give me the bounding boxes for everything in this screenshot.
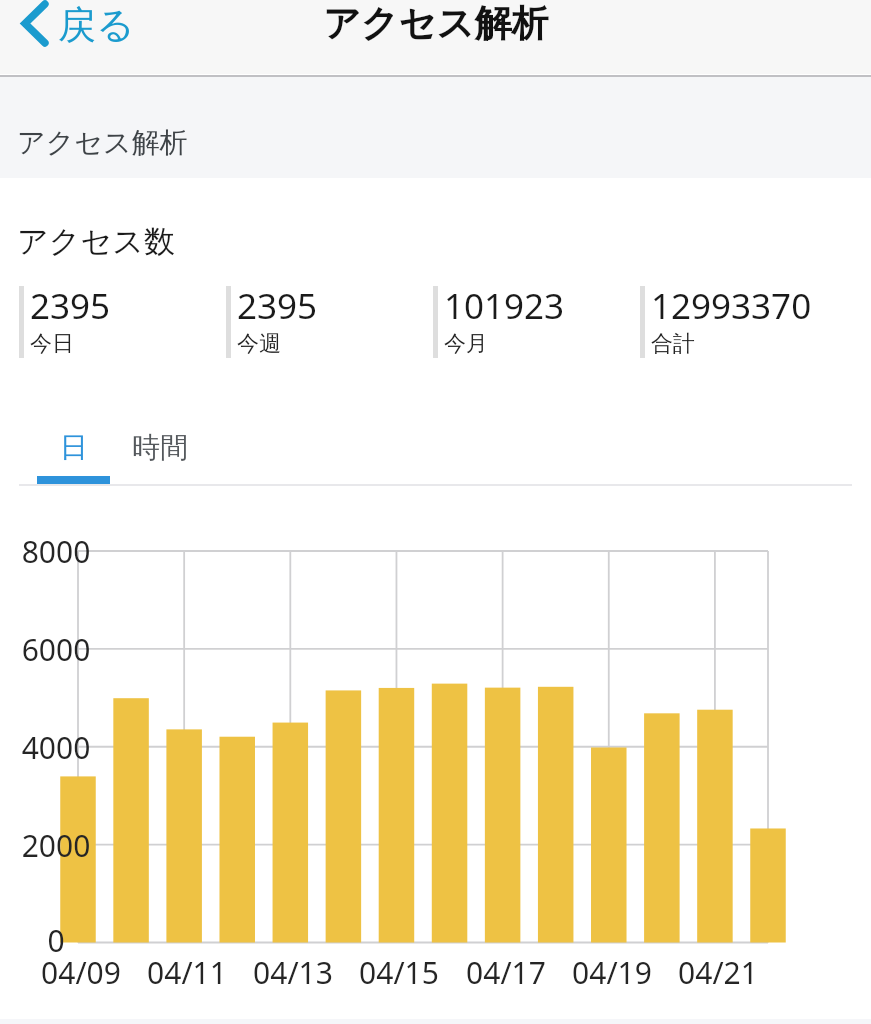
staticText: 0	[0, 920, 116, 961]
button[interactable]: 時間	[110, 422, 210, 472]
staticText: 04/15	[339, 952, 459, 993]
staticText: 時間	[132, 430, 188, 465]
staticText: 04/17	[446, 952, 566, 993]
staticText: 04/11	[127, 952, 247, 993]
staticText: 2395	[237, 282, 318, 330]
staticText: 2395	[30, 282, 111, 330]
staticText: 04/13	[233, 952, 353, 993]
staticText: 12993370	[651, 282, 812, 330]
staticText: 4000	[0, 727, 116, 768]
staticText: 04/09	[21, 952, 141, 993]
staticText: 04/21	[658, 952, 778, 993]
button[interactable]: 日	[37, 422, 110, 472]
staticText: アクセス解析	[323, 0, 549, 47]
staticText: 今週	[237, 330, 281, 354]
staticText: 04/19	[552, 952, 672, 993]
button[interactable]: 戻る Back	[0, 0, 149, 74]
staticText: アクセス数	[17, 222, 175, 261]
staticText: 合計	[651, 330, 695, 354]
staticText: 日	[60, 430, 88, 465]
staticText: 2000	[0, 825, 116, 866]
staticText: アクセス解析	[17, 125, 188, 160]
staticText: 6000	[0, 629, 116, 670]
staticText: 8000	[0, 531, 116, 572]
staticText: 今日	[30, 330, 74, 354]
staticText: 今月	[444, 330, 488, 354]
staticText: 101923	[444, 282, 565, 330]
staticText: 戻る	[58, 1, 135, 49]
